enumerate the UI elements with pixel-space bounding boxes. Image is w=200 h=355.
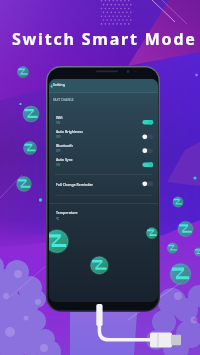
staticText: Wifi	[56, 115, 63, 120]
staticText: Auto Brightness	[56, 129, 83, 134]
staticText: OFF	[56, 135, 61, 139]
staticText: Auto Sync	[56, 157, 73, 162]
staticText: Bluetooth	[56, 143, 73, 148]
staticText: FAST CHARGE	[53, 98, 74, 102]
staticText: Temperature	[56, 210, 78, 215]
staticText: Full Change Reminder	[56, 182, 93, 187]
staticText: Switch Smart Mode	[12, 28, 197, 50]
staticText: Setting	[53, 82, 65, 87]
staticText: ON	[56, 121, 61, 125]
staticText: °C	[56, 217, 60, 221]
staticText: OFF	[56, 149, 61, 153]
staticText: ON	[56, 163, 61, 167]
